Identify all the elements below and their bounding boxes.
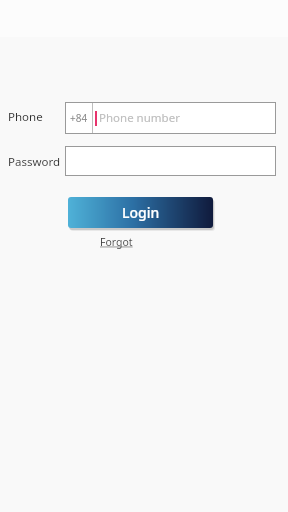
staticText: Phone number	[99, 110, 180, 126]
staticText: +84	[70, 111, 88, 125]
staticText: Forgot password	[100, 235, 182, 250]
button[interactable]: Login	[68, 197, 213, 228]
button[interactable]	[65, 146, 276, 176]
button[interactable]: +84	[65, 102, 276, 134]
staticText: Password	[8, 154, 61, 170]
staticText: Login	[122, 203, 160, 222]
staticText: Phone	[8, 109, 43, 125]
button[interactable]: Forgot password	[100, 235, 182, 250]
